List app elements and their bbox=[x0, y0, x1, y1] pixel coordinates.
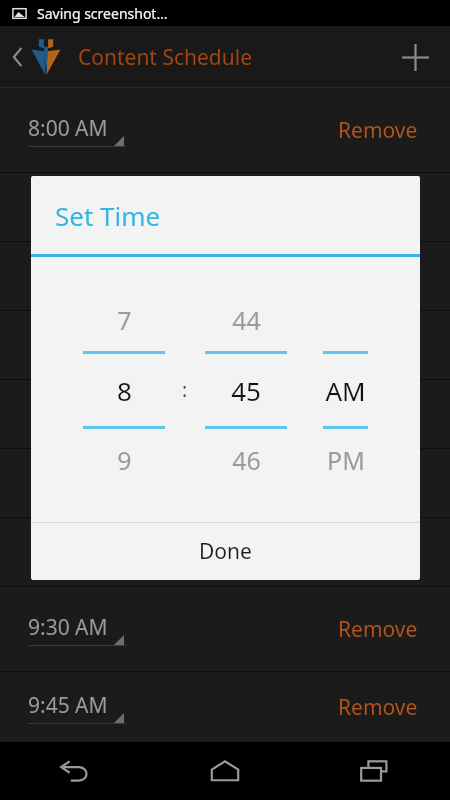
staticText: PM bbox=[327, 443, 365, 477]
staticText: Set Time bbox=[55, 198, 161, 233]
button[interactable]: Home bbox=[150, 742, 300, 800]
button[interactable]: 9:30 AM bbox=[0, 587, 450, 671]
button[interactable]: Remove bbox=[334, 611, 422, 648]
staticText: 44 bbox=[232, 303, 261, 337]
staticText: Remove bbox=[338, 615, 418, 644]
staticText: 45 bbox=[231, 373, 261, 408]
staticText: AM bbox=[325, 373, 366, 408]
staticText: 8:00 AM bbox=[28, 114, 108, 143]
button[interactable]: 7 bbox=[83, 257, 165, 522]
button[interactable]: Remove bbox=[334, 112, 422, 149]
button[interactable]: 44 bbox=[205, 257, 287, 522]
button[interactable]: Recent apps bbox=[300, 742, 450, 800]
staticText: 9:45 AM bbox=[28, 691, 108, 720]
button[interactable]: Remove bbox=[334, 689, 422, 726]
staticText: Content Schedule bbox=[78, 43, 252, 72]
button[interactable]: Back bbox=[0, 742, 150, 800]
staticText: Remove bbox=[338, 693, 418, 722]
staticText: 46 bbox=[232, 443, 261, 477]
button[interactable]: 8:00 AM bbox=[0, 88, 450, 172]
staticText: Done bbox=[199, 537, 252, 566]
staticText: 8 bbox=[117, 373, 132, 408]
button[interactable]: Done bbox=[31, 523, 420, 580]
button[interactable]: 9:45 AM bbox=[0, 672, 450, 742]
button[interactable]: Navigate up bbox=[6, 38, 66, 76]
staticText: Saving screenshot… bbox=[37, 4, 168, 23]
staticText: 7 bbox=[117, 303, 132, 337]
staticText: 9 bbox=[117, 443, 132, 477]
button[interactable]: Add bbox=[392, 34, 438, 80]
staticText: Remove bbox=[338, 116, 418, 145]
button[interactable]: AM bbox=[323, 257, 368, 522]
staticText: 9:30 AM bbox=[28, 613, 108, 642]
staticText: : bbox=[182, 377, 188, 403]
